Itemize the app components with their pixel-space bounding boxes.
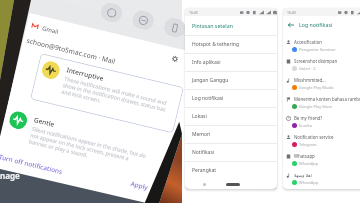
button[interactable]: Info aplikasi (185, 54, 277, 71)
button[interactable]: Settings (170, 54, 180, 64)
button[interactable] (30, 53, 184, 133)
staticText: Jangan Ganggu (192, 77, 229, 84)
button[interactable]: Quick setting (162, 16, 187, 39)
button[interactable]: Whatsapp (283, 147, 360, 166)
button[interactable]: Be my friend? (283, 109, 360, 128)
button[interactable]: Lokasi (185, 108, 277, 125)
staticText: 16:40 (287, 10, 296, 15)
button[interactable]: Turn off notifications (0, 152, 63, 176)
staticText: WhatsApp (299, 161, 319, 166)
staticText: Hotspot & tethering (192, 41, 239, 48)
button[interactable]: اهلا وسهلا (283, 166, 360, 185)
staticText: Gentle (33, 115, 55, 129)
staticText: schoon@9to5mac.com · Mail (26, 36, 117, 66)
button[interactable]: Hotspot & tethering (185, 36, 277, 53)
staticText: Google Play Musik (299, 85, 334, 90)
staticText: Be my friend? (294, 115, 360, 121)
button[interactable]: Accesification (283, 33, 360, 52)
staticText: Notifikasi (192, 149, 215, 156)
staticText: 16:40 (189, 10, 198, 15)
staticText: Log notifikasi (192, 95, 224, 102)
button[interactable]: Screenshot disimpan (283, 52, 360, 71)
staticText: Silent notifications appear in the shade… (28, 125, 147, 172)
staticText: Whatsapp (294, 153, 360, 159)
button[interactable]: Quick setting (194, 24, 219, 47)
staticText: Galeri · 2 (299, 66, 316, 71)
staticText: Pengantar Seminar (299, 47, 336, 52)
staticText: WhatsApp (299, 180, 319, 185)
staticText: Eureka (299, 123, 312, 128)
staticText: Info aplikasi (192, 59, 221, 66)
staticText: Pintasan setelan (192, 22, 233, 29)
staticText: اهلا وسهلا (294, 172, 360, 178)
staticText: Misshmmited... (294, 77, 360, 83)
staticText: Lokasi (192, 113, 207, 120)
button[interactable]: Jangan Ganggu (185, 72, 277, 89)
staticText: Google Play Store (299, 104, 333, 109)
staticText: Perangkat (192, 167, 217, 174)
staticText: Telegram (299, 142, 317, 147)
staticText: Notification service (294, 134, 360, 140)
button[interactable]: Back (286, 20, 295, 29)
staticText: nage (0, 170, 20, 181)
staticText: Gmail (41, 24, 59, 36)
button[interactable]: Apply (130, 179, 149, 192)
staticText: Log notifikasi (299, 21, 333, 28)
button[interactable]: Gentle (5, 110, 149, 172)
staticText: Accesification (294, 39, 360, 45)
button[interactable]: Notifikasi (185, 144, 277, 161)
button[interactable]: Memori (185, 126, 277, 143)
staticText: Interruptive (66, 65, 104, 83)
staticText: Memori (192, 131, 211, 138)
button[interactable]: Log notifikasi (185, 90, 277, 107)
button[interactable]: Menerima konten bahasa rambutan... (283, 90, 360, 109)
button[interactable]: Quick setting (99, 1, 124, 24)
button[interactable]: Notification service (283, 128, 360, 147)
button[interactable]: Quick setting (131, 9, 156, 32)
button[interactable]: Perangkat (185, 162, 277, 179)
staticText: Screenshot disimpan (294, 58, 360, 64)
button[interactable]: Misshmmited... (283, 71, 360, 90)
staticText: Menerima konten bahasa rambutan... (294, 96, 360, 102)
staticText: These notifications will make a sound an… (61, 75, 174, 121)
